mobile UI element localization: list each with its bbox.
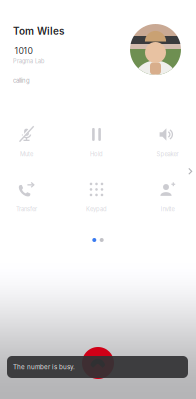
staticText: Hold [90,150,103,158]
staticText: Pragma Lab [13,58,44,65]
button[interactable]: End call [82,347,114,379]
button[interactable]: Speaker [135,125,196,158]
button[interactable]: Keypad [64,180,128,213]
staticText: Keypad [86,205,107,213]
button[interactable]: Invite [135,180,196,213]
staticText: Invite [160,205,174,213]
button[interactable]: Hold [64,125,128,158]
staticText: 1010 [14,46,32,56]
button[interactable]: Transfer [0,180,58,213]
button[interactable]: Mute [0,125,58,158]
staticText: calling [13,77,30,84]
staticText: Transfer [16,205,37,213]
staticText: The number is busy. [13,363,75,371]
staticText: Speaker [156,150,178,158]
staticText: Tom Wiles [13,25,64,37]
staticText: Mute [20,150,33,158]
